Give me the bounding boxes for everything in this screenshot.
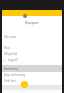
- staticText: Bifoga bild: [4, 52, 18, 56]
- staticText: Lagg till: [8, 58, 18, 62]
- staticText: Beskrivning: [4, 67, 19, 71]
- button[interactable]: Profile picture: [23, 14, 27, 18]
- staticText: Plats: [4, 46, 10, 50]
- staticText: Valfri text: [4, 79, 16, 83]
- staticText: Rapport: [25, 20, 39, 25]
- button[interactable]: Lagg till: [3, 58, 62, 62]
- button[interactable]: Add: [21, 81, 28, 88]
- staticText: Ditt namn: [4, 35, 17, 39]
- staticText: Ange beskrivning: [4, 73, 26, 77]
